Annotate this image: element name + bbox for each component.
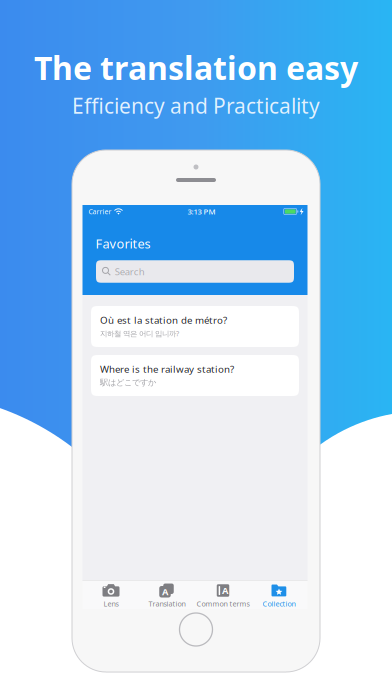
staticText: Search: [115, 265, 145, 278]
button[interactable]: A: [195, 581, 251, 609]
staticText: 지하철 역은 어디 입니까?: [100, 328, 179, 338]
staticText: Collection: [262, 599, 295, 609]
staticText: Carrier: [88, 207, 111, 216]
button[interactable]: Lens: [83, 581, 139, 609]
staticText: Où est la station de métro?: [100, 314, 227, 326]
staticText: The translation easy: [34, 46, 358, 89]
button[interactable]: Collection: [251, 581, 307, 609]
button[interactable]: Where is the railway station?: [91, 355, 299, 396]
staticText: Common terms: [196, 599, 249, 609]
staticText: 駅はどこですか: [100, 377, 156, 388]
staticText: Lens: [103, 599, 118, 609]
staticText: Efficiency and Practicality: [72, 92, 320, 120]
staticText: Where is the railway station?: [100, 362, 234, 375]
button[interactable]: Où est la station de métro?: [91, 306, 299, 347]
staticText: Translation: [148, 599, 185, 609]
button[interactable]: Search: [96, 260, 294, 283]
button[interactable]: A: [139, 581, 195, 609]
staticText: 3:13 PM: [188, 206, 216, 217]
staticText: Favorites: [95, 235, 150, 252]
staticText: A: [222, 584, 228, 597]
staticText: A: [162, 586, 168, 598]
